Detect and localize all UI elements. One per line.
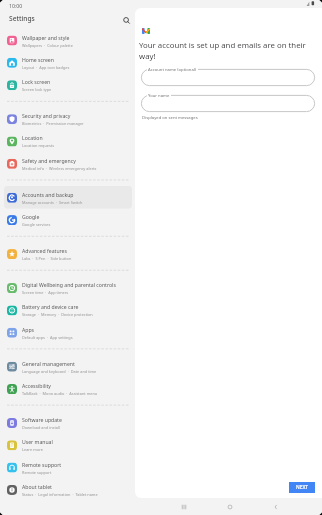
staticText: Your account is set up and emails are on… [139, 40, 316, 62]
staticText: Digital Wellbeing and parental controls [22, 281, 116, 288]
staticText: General management [22, 360, 75, 367]
button[interactable]: Advanced features [4, 242, 132, 265]
button[interactable]: About tablet [4, 478, 132, 501]
button[interactable]: Google [4, 208, 132, 231]
staticText: Screen time · App timers [22, 290, 69, 295]
staticText: NEXT [296, 484, 309, 491]
button[interactable]: Wallpaper and style [4, 28, 132, 51]
staticText: About tablet [22, 483, 52, 490]
staticText: Advanced features [22, 247, 67, 254]
staticText: Software update [22, 416, 62, 423]
staticText: Google services [22, 222, 51, 227]
staticText: Labs · S Pen · Side button [22, 256, 72, 261]
staticText: Download and install [22, 425, 60, 430]
staticText: Accessibility [22, 382, 51, 389]
staticText: Medical info · Wireless emergency alerts [22, 166, 97, 171]
button[interactable]: Remote support [4, 456, 132, 479]
staticText: Security and privacy [22, 112, 71, 119]
staticText: Location [22, 134, 43, 141]
staticText: Screen lock type [22, 87, 52, 92]
staticText: Displayed on sent messages [142, 115, 198, 121]
button[interactable]: Digital Wellbeing and parental controls [4, 276, 132, 299]
button[interactable]: Lock screen [4, 73, 132, 96]
staticText: Settings [9, 14, 35, 23]
button[interactable]: Software update [4, 411, 132, 434]
staticText: Accounts and backup [22, 191, 74, 198]
staticText: Language and keyboard · Date and time [22, 369, 97, 374]
button[interactable]: Security and privacy [4, 107, 132, 130]
staticText: User manual [22, 438, 53, 445]
button[interactable]: Accounts and backup [4, 186, 132, 209]
staticText: Default apps · App settings [22, 335, 73, 340]
button[interactable]: Accessibility [4, 377, 132, 400]
staticText: Battery and device care [22, 303, 79, 310]
staticText: Layout · App icon badges [22, 65, 70, 70]
button[interactable]: User manual [4, 433, 132, 456]
button[interactable]: Home [222, 499, 238, 515]
staticText: Lock screen [22, 78, 51, 85]
button[interactable]: Battery and device care [4, 298, 132, 321]
staticText: Storage · Memory · Device protection [22, 312, 93, 317]
button[interactable]: Apps [4, 321, 132, 344]
button[interactable]: Home screen [4, 51, 132, 74]
staticText: Home screen [22, 56, 54, 63]
staticText: TalkBack · Mono audio · Assistant menu [22, 391, 98, 396]
staticText: Status · Legal information · Tablet name [22, 492, 98, 497]
staticText: Wallpaper and style [22, 33, 70, 40]
staticText: Location requests [22, 143, 55, 148]
staticText: Google [22, 213, 40, 220]
button[interactable]: General management [4, 355, 132, 378]
staticText: Manage accounts · Smart Switch [22, 200, 83, 205]
staticText: 10:00 [9, 2, 23, 9]
button[interactable]: Search [120, 14, 132, 26]
staticText: Wallpapers · Colour palette [22, 42, 73, 47]
staticText: Safety and emergency [22, 157, 76, 164]
button[interactable]: Location [4, 129, 132, 152]
staticText: Remote support [22, 470, 52, 475]
button[interactable]: Safety and emergency [4, 152, 132, 175]
staticText: Apps [22, 326, 35, 333]
button[interactable]: Recents [176, 499, 192, 515]
button[interactable]: NEXT [289, 482, 315, 493]
button[interactable]: Back [268, 499, 284, 515]
staticText: Learn more [22, 447, 43, 452]
staticText: Remote support [22, 461, 62, 468]
staticText: Biometrics · Permission manager [22, 121, 84, 126]
staticText: Your name [148, 93, 170, 99]
staticText: Account name (optional) [148, 67, 197, 73]
